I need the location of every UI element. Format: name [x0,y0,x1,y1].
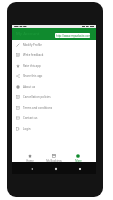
staticText: Login [23,127,31,131]
button[interactable]: Contact us [12,113,96,123]
staticText: Rate this app [23,64,41,68]
button[interactable]: http://www.mywebsite.com [55,33,90,38]
staticText: Write feedback [23,53,44,57]
button[interactable]: Home [18,150,42,166]
staticText: Cancellation policies [23,95,51,99]
staticText: http://www.mywebsite.com [56,34,90,38]
button[interactable]: Cancellation policies [12,92,96,102]
button[interactable]: About us [12,82,96,92]
staticText: Share this app [23,74,43,78]
staticText: Home [26,159,34,163]
staticText: Modify Profile [23,43,42,47]
button[interactable]: Modify Profile [12,40,96,50]
staticText: More [75,159,82,163]
button[interactable]: More [66,150,90,166]
button[interactable]: Share this app [12,71,96,81]
button[interactable]: Terms and conditions [12,103,96,113]
staticText: Terms and conditions [23,106,53,110]
staticText: About us [23,85,36,89]
staticText: Contact us [23,116,38,120]
button[interactable]: Recents [77,166,83,172]
button[interactable]: Rate this app [12,61,96,71]
staticText: My Bookings [46,159,62,163]
button[interactable]: Login [12,124,96,134]
button[interactable]: Back [29,166,35,172]
staticText: My Account [16,31,40,37]
button[interactable]: Write feedback [12,50,96,60]
button[interactable]: My Bookings [42,150,66,166]
button[interactable]: Home [53,166,59,172]
